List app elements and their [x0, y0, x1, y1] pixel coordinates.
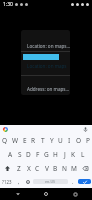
button[interactable]: I — [65, 133, 74, 147]
button[interactable]: , — [14, 175, 23, 188]
staticText: I — [68, 136, 71, 145]
button[interactable]: F — [33, 147, 42, 161]
button[interactable]: Google — [3, 127, 8, 132]
button[interactable]: O — [74, 133, 83, 147]
button[interactable]: U — [56, 133, 65, 147]
button[interactable]: Recent apps — [64, 188, 86, 200]
staticText: 1:30 — [3, 1, 13, 8]
staticText: A — [8, 150, 13, 159]
button[interactable]: S — [15, 147, 24, 161]
staticText: Z — [17, 164, 21, 173]
staticText: D — [26, 150, 31, 159]
button[interactable]: V — [42, 161, 51, 175]
button[interactable]: C — [33, 161, 42, 175]
staticText: S — [18, 150, 22, 159]
staticText: K — [71, 150, 76, 159]
staticText: Q — [2, 136, 8, 145]
staticText: M — [71, 164, 77, 173]
button[interactable]: L — [78, 147, 87, 161]
staticText: T — [41, 136, 45, 145]
button[interactable]: B — [51, 161, 60, 175]
button[interactable]: A — [5, 147, 15, 161]
button[interactable]: X — [24, 161, 33, 175]
button[interactable]: R — [29, 133, 38, 147]
button[interactable]: Space — [33, 179, 68, 184]
staticText: R — [31, 136, 36, 145]
button[interactable]: ?123 — [0, 175, 14, 188]
staticText: Address: on maps... — [27, 86, 70, 92]
button[interactable]: M — [69, 161, 78, 175]
button[interactable]: P — [83, 133, 92, 147]
staticText: H — [53, 150, 58, 159]
button[interactable]: K — [69, 147, 78, 161]
button[interactable]: Location: on maps — [21, 52, 70, 75]
staticText: en-US — [45, 179, 56, 184]
staticText: O — [76, 136, 82, 145]
staticText: L — [81, 150, 85, 159]
staticText: P — [86, 136, 90, 145]
button[interactable]: Backspace — [78, 161, 92, 175]
button[interactable]: E — [20, 133, 29, 147]
button[interactable]: D — [24, 147, 33, 161]
button[interactable]: Y — [47, 133, 56, 147]
button[interactable]: Address: on maps... — [21, 76, 70, 95]
button[interactable]: Enter — [78, 179, 91, 184]
staticText: B — [53, 164, 58, 173]
staticText: Location: on maps... — [27, 43, 70, 49]
button[interactable]: Voice input — [83, 127, 88, 132]
button[interactable]: Emoji — [23, 175, 32, 188]
staticText: N — [62, 164, 67, 173]
button[interactable]: Location: on maps... — [21, 30, 70, 51]
staticText: V — [45, 164, 49, 173]
button[interactable]: J — [60, 147, 69, 161]
staticText: J — [64, 150, 66, 159]
staticText: ?123 — [2, 179, 12, 185]
staticText: , — [18, 178, 20, 185]
staticText: F — [36, 150, 40, 159]
button[interactable]: W — [10, 133, 20, 147]
button[interactable]: Q — [0, 133, 10, 147]
staticText: . — [72, 178, 74, 185]
staticText: X — [27, 164, 31, 173]
staticText: C — [35, 164, 40, 173]
staticText: E — [23, 136, 27, 145]
staticText: Y — [50, 136, 54, 145]
button[interactable]: T — [38, 133, 47, 147]
staticText: U — [58, 136, 63, 145]
staticText: Location: on maps — [27, 63, 67, 69]
button[interactable]: Z — [14, 161, 24, 175]
button[interactable]: Shift — [0, 161, 14, 175]
staticText: W — [12, 136, 19, 145]
button[interactable]: G — [42, 147, 51, 161]
button[interactable]: H — [51, 147, 60, 161]
button[interactable]: Back — [7, 188, 29, 200]
button[interactable]: N — [60, 161, 69, 175]
button[interactable]: Home — [35, 188, 57, 200]
button[interactable]: . — [69, 175, 77, 188]
staticText: G — [44, 150, 49, 159]
